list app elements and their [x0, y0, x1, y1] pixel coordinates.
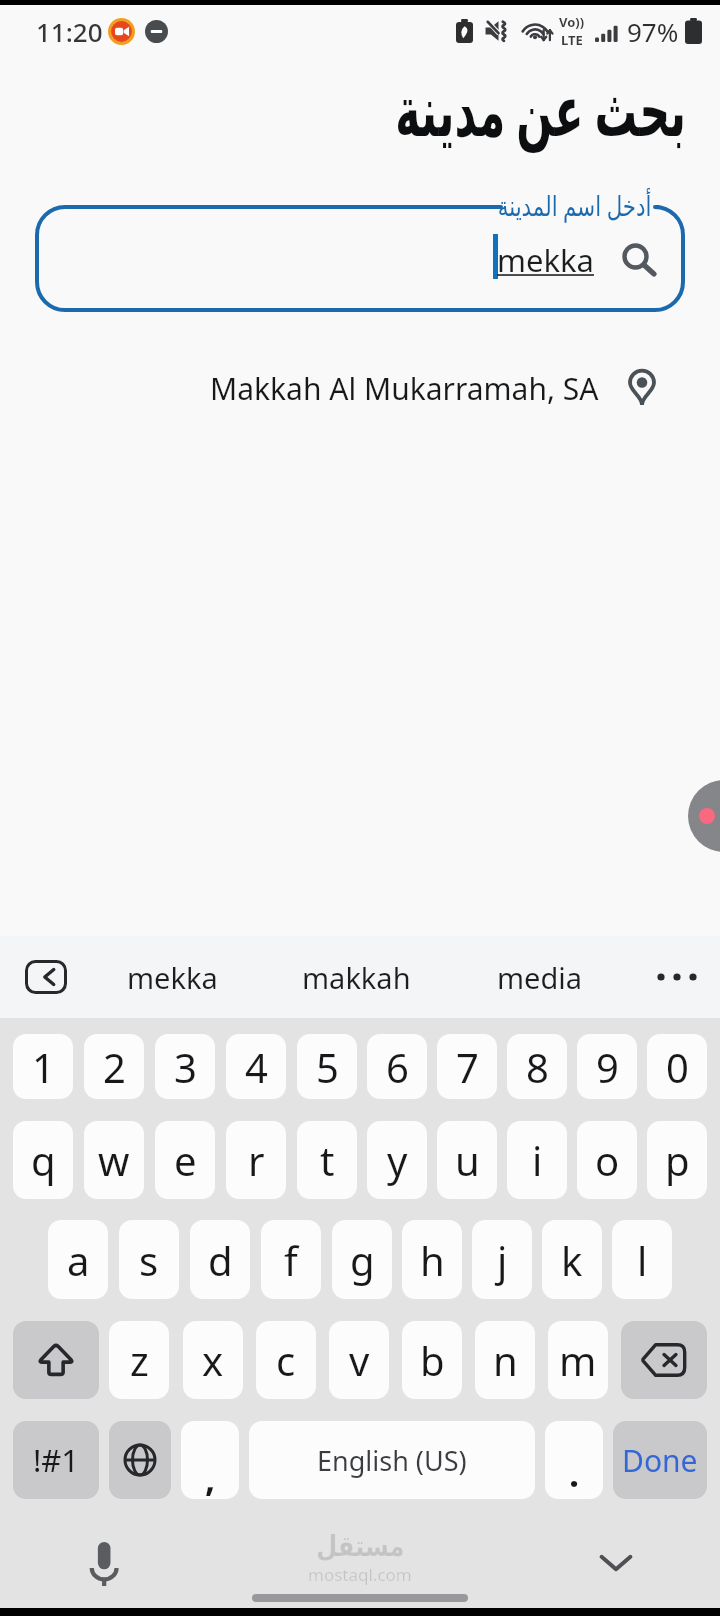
staticText: Makkah Al Mukarramah, SA [210, 368, 599, 407]
staticText: mostaql.com [308, 1563, 412, 1586]
button[interactable]: s [119, 1220, 179, 1299]
button[interactable]: t [297, 1121, 357, 1199]
button[interactable]: d [190, 1220, 250, 1299]
staticText: 6 [386, 1040, 409, 1094]
staticText: q [31, 1133, 56, 1187]
button[interactable]: n [475, 1321, 535, 1399]
button[interactable]: makkah [264, 936, 448, 1018]
button[interactable]: !#1 [13, 1421, 99, 1499]
button[interactable]: English (US) [249, 1421, 535, 1499]
button[interactable]: 1 [13, 1034, 73, 1099]
button[interactable]: More suggestions [632, 936, 702, 1018]
button[interactable]: 6 [367, 1034, 427, 1099]
staticText: n [493, 1333, 518, 1387]
staticText: a [67, 1233, 90, 1287]
button[interactable] [13, 1321, 99, 1399]
staticText: w [98, 1133, 130, 1187]
staticText: . [569, 1449, 580, 1498]
staticText: mekka [127, 958, 218, 997]
staticText: p [665, 1133, 690, 1187]
button[interactable]: z [109, 1321, 169, 1399]
button[interactable]: x [183, 1321, 243, 1399]
button[interactable]: w [84, 1121, 144, 1199]
button[interactable]: Screen recorder [688, 780, 720, 852]
button[interactable]: j [472, 1220, 532, 1299]
button[interactable]: b [402, 1321, 462, 1399]
button[interactable]: y [367, 1121, 427, 1199]
button[interactable]: 8 [507, 1034, 567, 1099]
staticText: b [420, 1333, 445, 1387]
button[interactable]: 2 [84, 1034, 144, 1099]
button[interactable]: a [48, 1220, 108, 1299]
button[interactable]: l [612, 1220, 672, 1299]
button[interactable]: Search [613, 236, 663, 286]
staticText: m [559, 1333, 597, 1387]
button[interactable]: v [329, 1321, 389, 1399]
staticText: LTE [561, 31, 583, 49]
staticText: u [455, 1133, 480, 1187]
staticText: 9 [596, 1040, 619, 1094]
staticText: , [205, 1453, 216, 1499]
staticText: 5 [316, 1040, 339, 1094]
button[interactable]: u [437, 1121, 497, 1199]
staticText: e [174, 1133, 197, 1187]
staticText: k [561, 1233, 583, 1287]
button[interactable]: 0 [647, 1034, 707, 1099]
staticText: l [637, 1233, 648, 1287]
button[interactable]: h [402, 1220, 462, 1299]
staticText: 2 [103, 1040, 126, 1094]
staticText: y [387, 1133, 408, 1187]
button[interactable]: p [647, 1121, 707, 1199]
staticText: c [276, 1333, 296, 1387]
staticText: !#1 [33, 1439, 80, 1481]
button[interactable]: Done [613, 1421, 707, 1499]
button[interactable]: o [577, 1121, 637, 1199]
staticText: i [532, 1133, 543, 1187]
staticText: 3 [174, 1040, 197, 1094]
other: Shift [13, 1321, 99, 1399]
staticText: 7 [456, 1040, 479, 1094]
staticText: x [202, 1333, 224, 1387]
button[interactable]: i [507, 1121, 567, 1199]
button[interactable]: Previous suggestions [25, 960, 67, 994]
staticText: أدخل اسم المدينة [498, 185, 652, 223]
staticText: makkah [302, 958, 411, 997]
other: Backspace [621, 1321, 707, 1399]
button[interactable]: e [155, 1121, 215, 1199]
button[interactable]: 5 [297, 1034, 357, 1099]
button[interactable] [109, 1421, 171, 1499]
button[interactable]: c [256, 1321, 316, 1399]
button[interactable]: 3 [155, 1034, 215, 1099]
staticText: mekka [497, 239, 594, 281]
button[interactable]: f [261, 1220, 321, 1299]
button[interactable]: r [226, 1121, 286, 1199]
staticText: English (US) [317, 1442, 467, 1479]
staticText: v [349, 1333, 370, 1387]
other: Change language [109, 1421, 171, 1499]
staticText: j [497, 1233, 508, 1287]
staticText: 8 [526, 1040, 549, 1094]
button[interactable]: g [332, 1220, 392, 1299]
staticText: f [284, 1233, 298, 1287]
button[interactable]: m [548, 1321, 608, 1399]
staticText: مستقل [316, 1531, 405, 1563]
staticText: h [420, 1233, 445, 1287]
button[interactable]: mekka [80, 936, 264, 1018]
button[interactable]: , [181, 1421, 239, 1499]
staticText: 1 [32, 1040, 55, 1094]
button[interactable] [621, 1321, 707, 1399]
button[interactable]: media [448, 936, 632, 1018]
button[interactable]: 4 [226, 1034, 286, 1099]
button[interactable]: Makkah Al Mukarramah, SA [0, 351, 720, 407]
button[interactable]: k [542, 1220, 602, 1299]
staticText: Vo)) [559, 13, 585, 31]
staticText: s [139, 1233, 159, 1287]
button[interactable]: . [545, 1421, 603, 1499]
button[interactable]: 7 [437, 1034, 497, 1099]
staticText: Done [622, 1440, 698, 1481]
staticText: z [130, 1333, 149, 1387]
staticText: 11:20 [36, 14, 103, 49]
button[interactable]: q [13, 1121, 73, 1199]
staticText: d [208, 1233, 233, 1287]
button[interactable]: 9 [577, 1034, 637, 1099]
